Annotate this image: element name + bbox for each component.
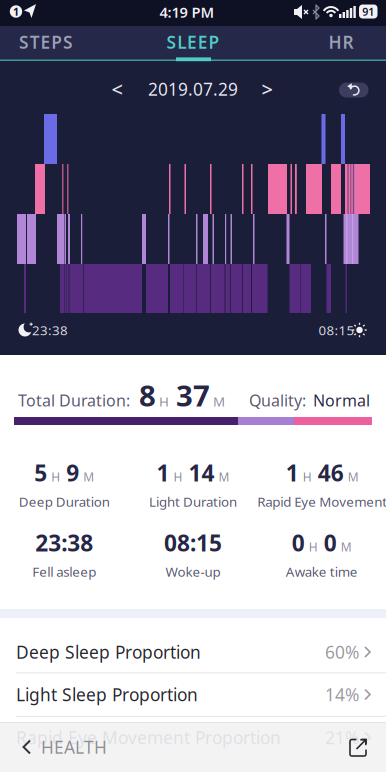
staticText: 14 <box>188 458 214 488</box>
staticText: M <box>83 469 94 485</box>
staticText: M <box>348 469 359 485</box>
staticText: 14% <box>325 683 359 706</box>
button[interactable]: SLEEP <box>138 25 248 59</box>
staticText: 1 <box>156 458 169 488</box>
staticText: H <box>159 392 169 410</box>
button[interactable]: HR <box>286 25 386 59</box>
staticText: 8 <box>139 375 156 414</box>
staticText: HEALTH <box>41 735 107 758</box>
staticText: 9 <box>66 458 79 488</box>
staticText: Quality: <box>249 389 306 411</box>
staticText: 23:38 <box>35 528 93 558</box>
button[interactable]: Next day <box>252 76 282 102</box>
staticText: Awake time <box>286 563 358 580</box>
staticText: M <box>341 539 352 555</box>
staticText: 37 <box>176 375 210 414</box>
staticText: 2019.07.29 <box>148 77 238 100</box>
staticText: < <box>111 76 122 102</box>
staticText: 5 <box>34 458 47 488</box>
staticText: SLEEP <box>166 30 220 53</box>
staticText: Total Duration: <box>18 389 130 411</box>
button[interactable]: Reset <box>0 0 386 772</box>
staticText: 0 <box>292 528 305 558</box>
staticText: 1 <box>286 458 299 488</box>
staticText: H <box>51 469 60 485</box>
staticText: M <box>218 469 229 485</box>
button[interactable]: Back to Health <box>5 722 119 772</box>
staticText: 08:15 <box>164 528 222 558</box>
staticText: HR <box>329 30 353 53</box>
staticText: 21% <box>325 726 359 749</box>
button[interactable]: Light Sleep Proportion <box>0 673 386 716</box>
staticText: 0 <box>324 528 337 558</box>
staticText: 08:15 <box>318 321 354 339</box>
button[interactable]: Deep Sleep Proportion <box>0 631 386 672</box>
staticText: 4:19 PM <box>159 2 214 22</box>
staticText: Deep Sleep Proportion <box>16 640 201 663</box>
staticText: M <box>213 392 225 410</box>
staticText: Deep Duration <box>19 493 110 510</box>
staticText: 1 <box>13 4 19 19</box>
staticText: Normal <box>313 389 370 411</box>
staticText: Light Duration <box>149 493 237 510</box>
staticText: Light Sleep Proportion <box>16 683 198 706</box>
staticText: H <box>173 469 182 485</box>
staticText: 46 <box>318 458 344 488</box>
staticText: Woke-up <box>165 563 220 580</box>
staticText: > <box>261 76 272 102</box>
staticText: Rapid Eye Movement <box>257 493 386 510</box>
staticText: 91 <box>362 4 374 19</box>
staticText: 60% <box>325 640 359 663</box>
button[interactable]: Share <box>339 723 377 772</box>
button[interactable]: STEPS <box>0 25 101 59</box>
staticText: H <box>303 469 312 485</box>
staticText: H <box>309 539 318 555</box>
button[interactable]: Previous day <box>102 76 132 102</box>
staticText: STEPS <box>19 30 73 53</box>
staticText: Fell asleep <box>32 563 96 580</box>
staticText: Rapid Eye Movement Proportion <box>16 726 281 749</box>
staticText: 23:38 <box>32 321 68 339</box>
